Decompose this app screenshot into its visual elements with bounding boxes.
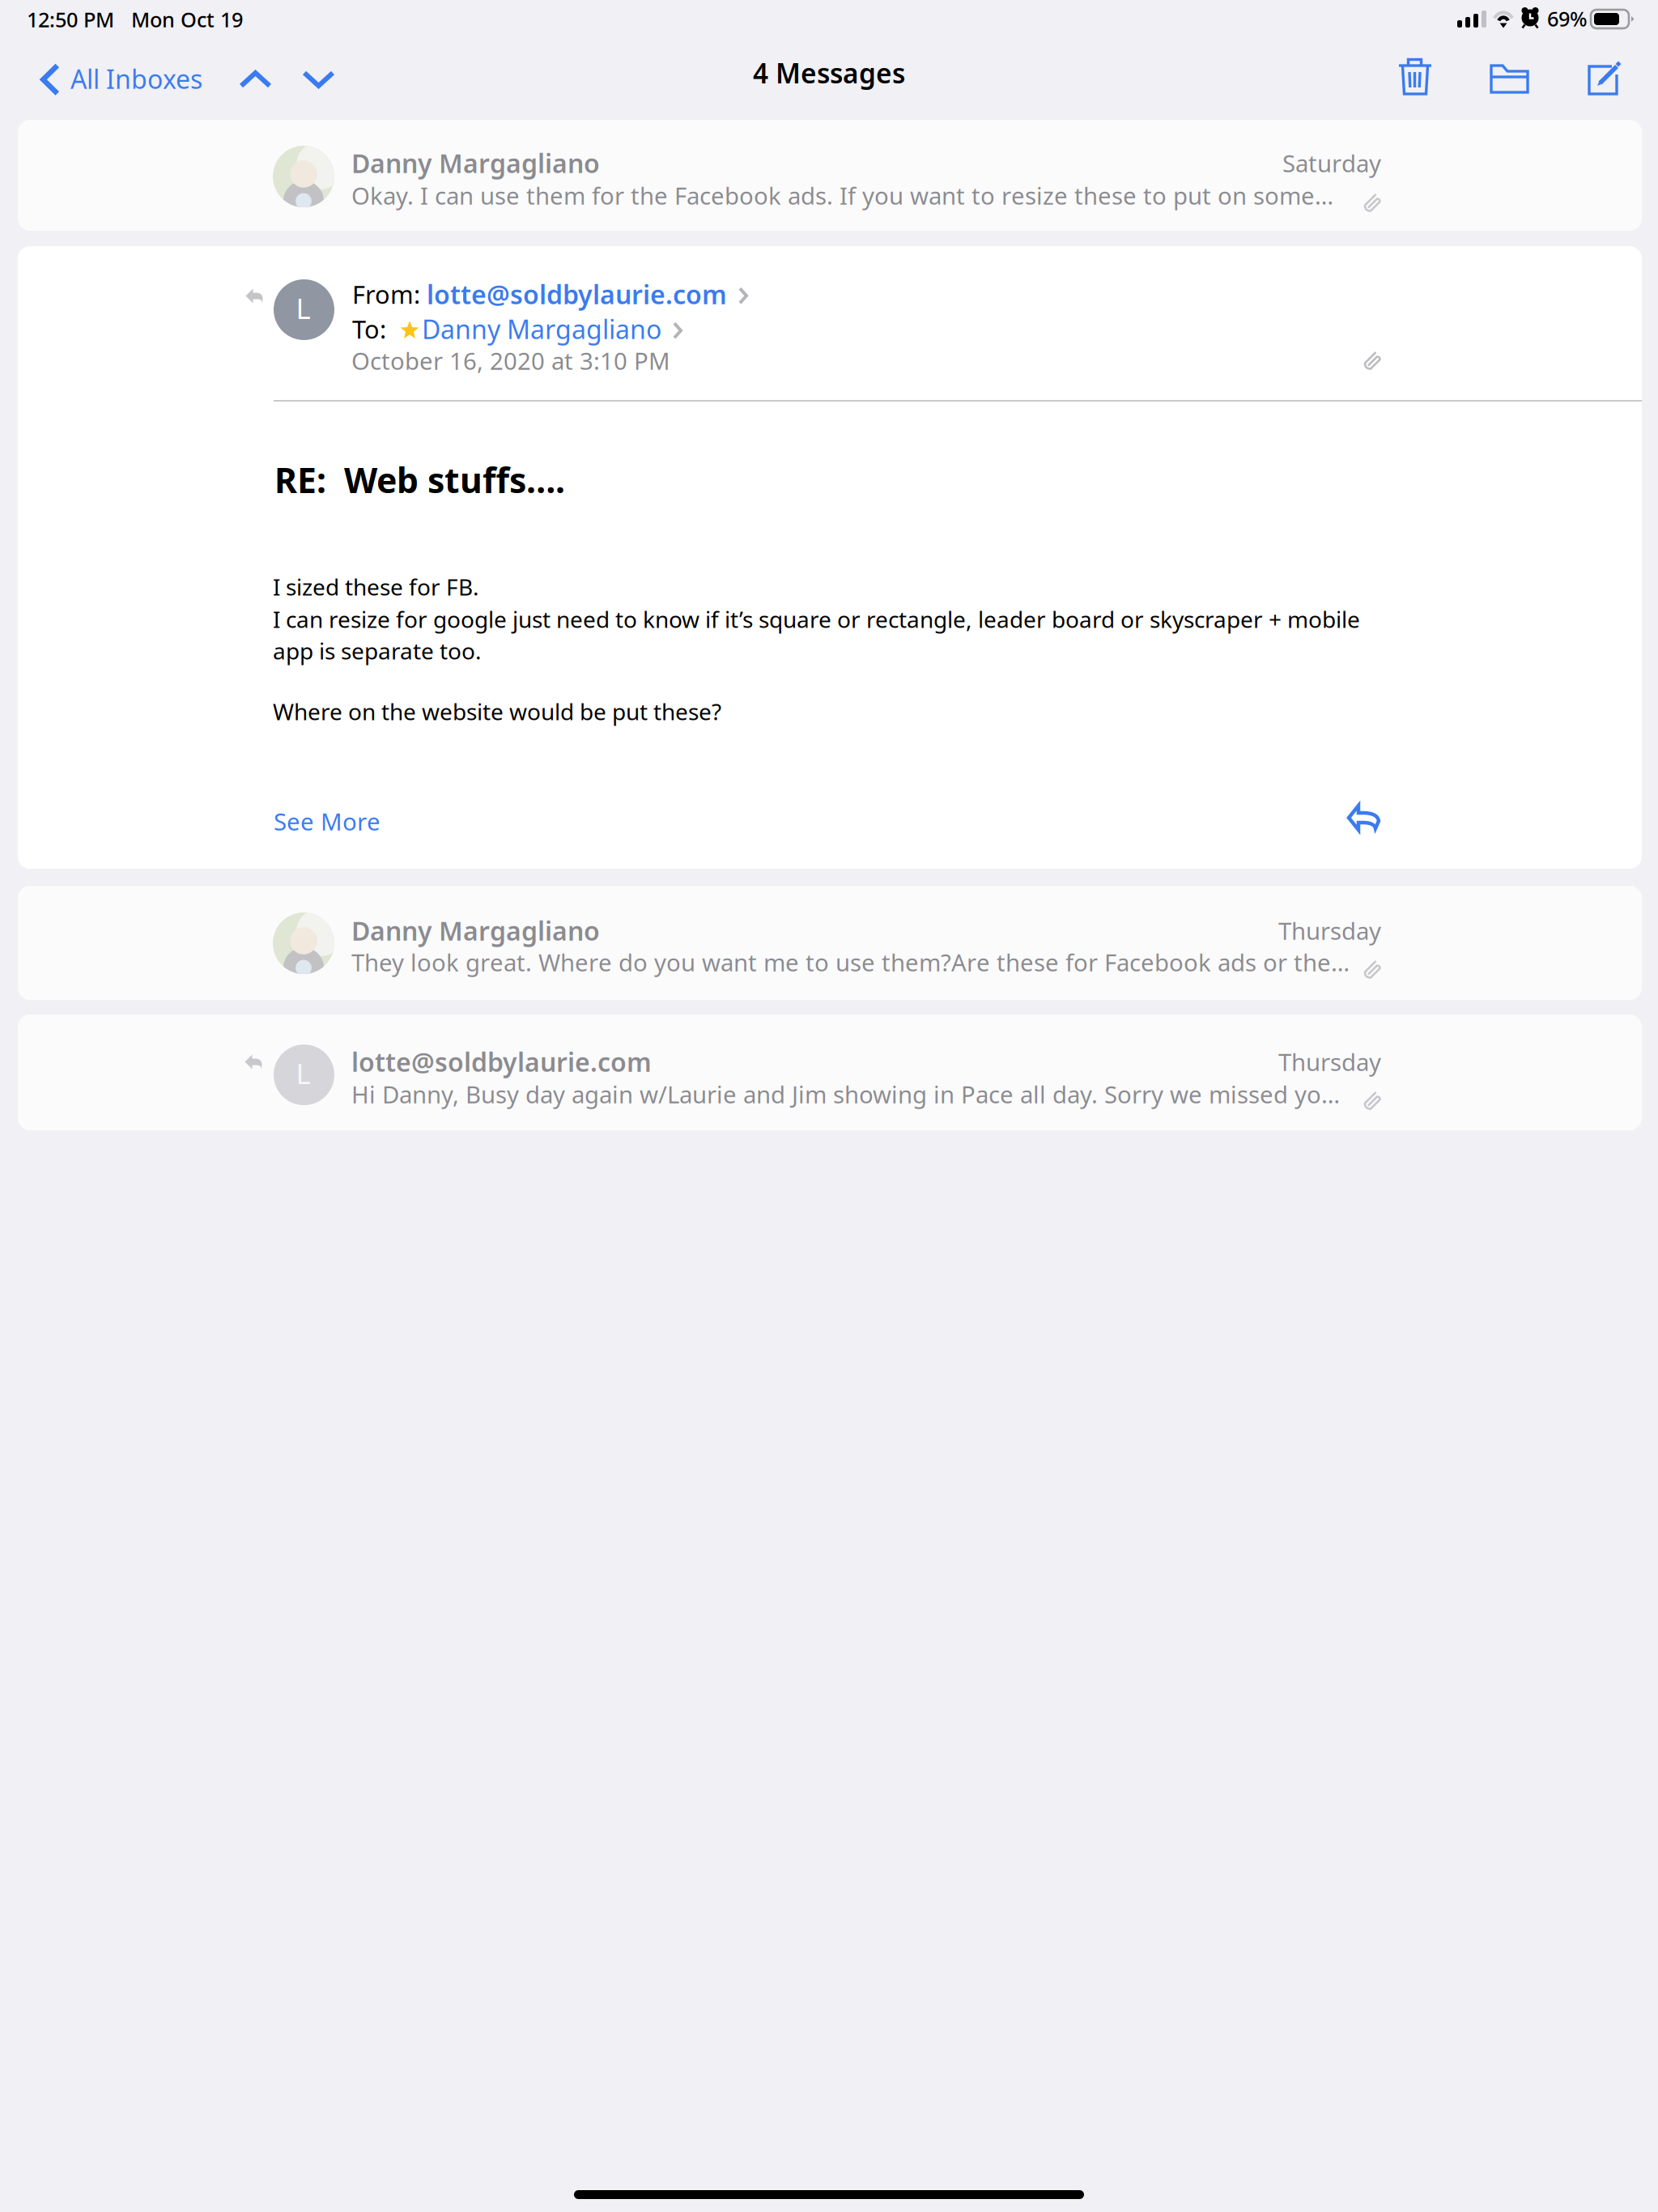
- staticText: From:: [352, 278, 427, 311]
- staticText: Where on the website would be put these?: [273, 696, 721, 726]
- staticText: 69%: [1547, 5, 1588, 32]
- staticText: Thursday: [1278, 1046, 1381, 1078]
- staticText: Hi Danny, Busy day again w/Laurie and Ji…: [351, 1078, 1340, 1110]
- button[interactable]: [18, 886, 1642, 1000]
- staticText: 12:50 PM: [27, 6, 114, 33]
- staticText: All Inboxes: [70, 62, 202, 96]
- staticText: 4 Messages: [753, 55, 905, 91]
- staticText: Danny Margagliano: [351, 913, 600, 948]
- staticText: October 16, 2020 at 3:10 PM: [351, 345, 670, 376]
- button[interactable]: See More: [274, 799, 392, 844]
- staticText: L: [296, 1055, 310, 1092]
- staticText: I sized these for FB.: [273, 572, 479, 602]
- button[interactable]: All Inboxes: [31, 53, 212, 106]
- button[interactable]: Next message: [291, 59, 346, 100]
- button[interactable]: [18, 120, 1642, 231]
- staticText: Thursday: [1278, 915, 1381, 946]
- staticText: Saturday: [1282, 147, 1381, 179]
- staticText: lotte@soldbylaurie.com: [351, 1044, 652, 1079]
- staticText: See More: [274, 806, 380, 837]
- button[interactable]: lotte@soldbylaurie.com: [427, 277, 748, 311]
- staticText: app is separate too.: [273, 636, 482, 666]
- staticText: They look great. Where do you want me to…: [351, 946, 1350, 978]
- staticText: I can resize for google just need to kno…: [273, 604, 1360, 634]
- staticText: Mon Oct 19: [131, 6, 243, 33]
- staticText: L: [296, 289, 310, 327]
- staticText: Danny Margagliano: [422, 312, 661, 346]
- button[interactable]: Danny Margagliano: [399, 312, 682, 346]
- button[interactable]: Reply: [1346, 802, 1382, 833]
- staticText: To:: [352, 312, 399, 345]
- button[interactable]: Previous message: [227, 59, 283, 100]
- staticText: Okay. I can use them for the Facebook ad…: [351, 180, 1333, 211]
- button[interactable]: Delete: [1386, 44, 1443, 106]
- button[interactable]: Compose: [1576, 49, 1634, 107]
- button[interactable]: Move to folder: [1478, 51, 1541, 105]
- button[interactable]: [18, 1015, 1642, 1130]
- staticText: Danny Margagliano: [351, 146, 600, 180]
- staticText: RE: Web stuffs….: [274, 457, 565, 503]
- staticText: lotte@soldbylaurie.com: [427, 277, 727, 311]
